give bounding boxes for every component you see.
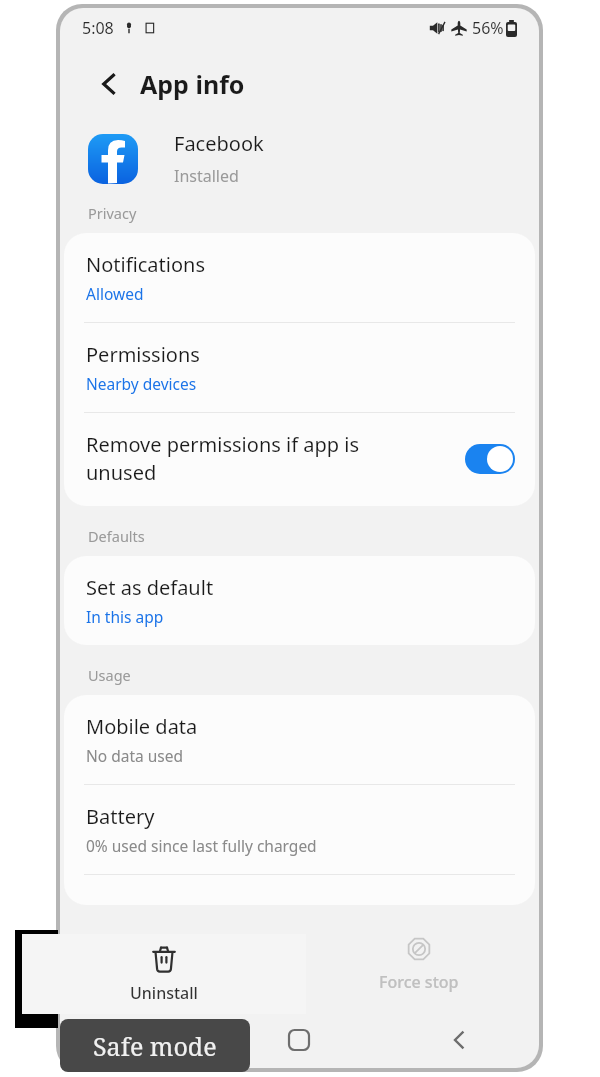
staticText: Nearby devices [86, 373, 197, 394]
staticText: Notifications [86, 251, 205, 278]
button[interactable]: Force stop [299, 916, 539, 1012]
button[interactable]: Back [379, 1012, 539, 1068]
button[interactable]: Set as default [64, 556, 535, 645]
staticText: No data used [86, 745, 184, 766]
button[interactable]: Battery [64, 785, 535, 874]
button[interactable]: Remove permissions if app is unused [64, 413, 535, 506]
staticText: Allowed [86, 283, 144, 304]
staticText: Privacy [88, 203, 137, 223]
staticText: Safe mode [93, 1029, 217, 1063]
staticText: Installed [174, 165, 239, 187]
staticText: Uninstall [130, 982, 198, 1004]
staticText: 5:08 [82, 17, 114, 39]
staticText: Mobile data [86, 713, 198, 740]
staticText: Uninstall [146, 972, 214, 994]
button[interactable]: Notifications [64, 233, 535, 322]
staticText: 0% used since last fully charged [86, 835, 317, 856]
button[interactable]: Mobile data [64, 695, 535, 784]
staticText: Permissions [86, 341, 200, 368]
button[interactable]: Remove permissions toggle [465, 444, 515, 474]
staticText: App info [140, 67, 245, 101]
staticText: Usage [88, 665, 131, 685]
button[interactable]: Home [219, 1012, 379, 1068]
staticText: Set as default [86, 574, 214, 601]
staticText: In this app [86, 606, 164, 627]
staticText: Force stop [379, 971, 459, 993]
button[interactable]: Uninstall [22, 934, 306, 1014]
button[interactable]: Permissions [64, 323, 535, 412]
staticText: Battery [86, 803, 155, 830]
staticText: Remove permissions if app is unused [86, 431, 453, 486]
staticText: Defaults [88, 526, 145, 546]
staticText: Facebook [174, 130, 264, 157]
button[interactable]: Back [86, 61, 132, 107]
staticText: 56% [472, 17, 504, 39]
button[interactable]: Uninstall [60, 916, 299, 1012]
